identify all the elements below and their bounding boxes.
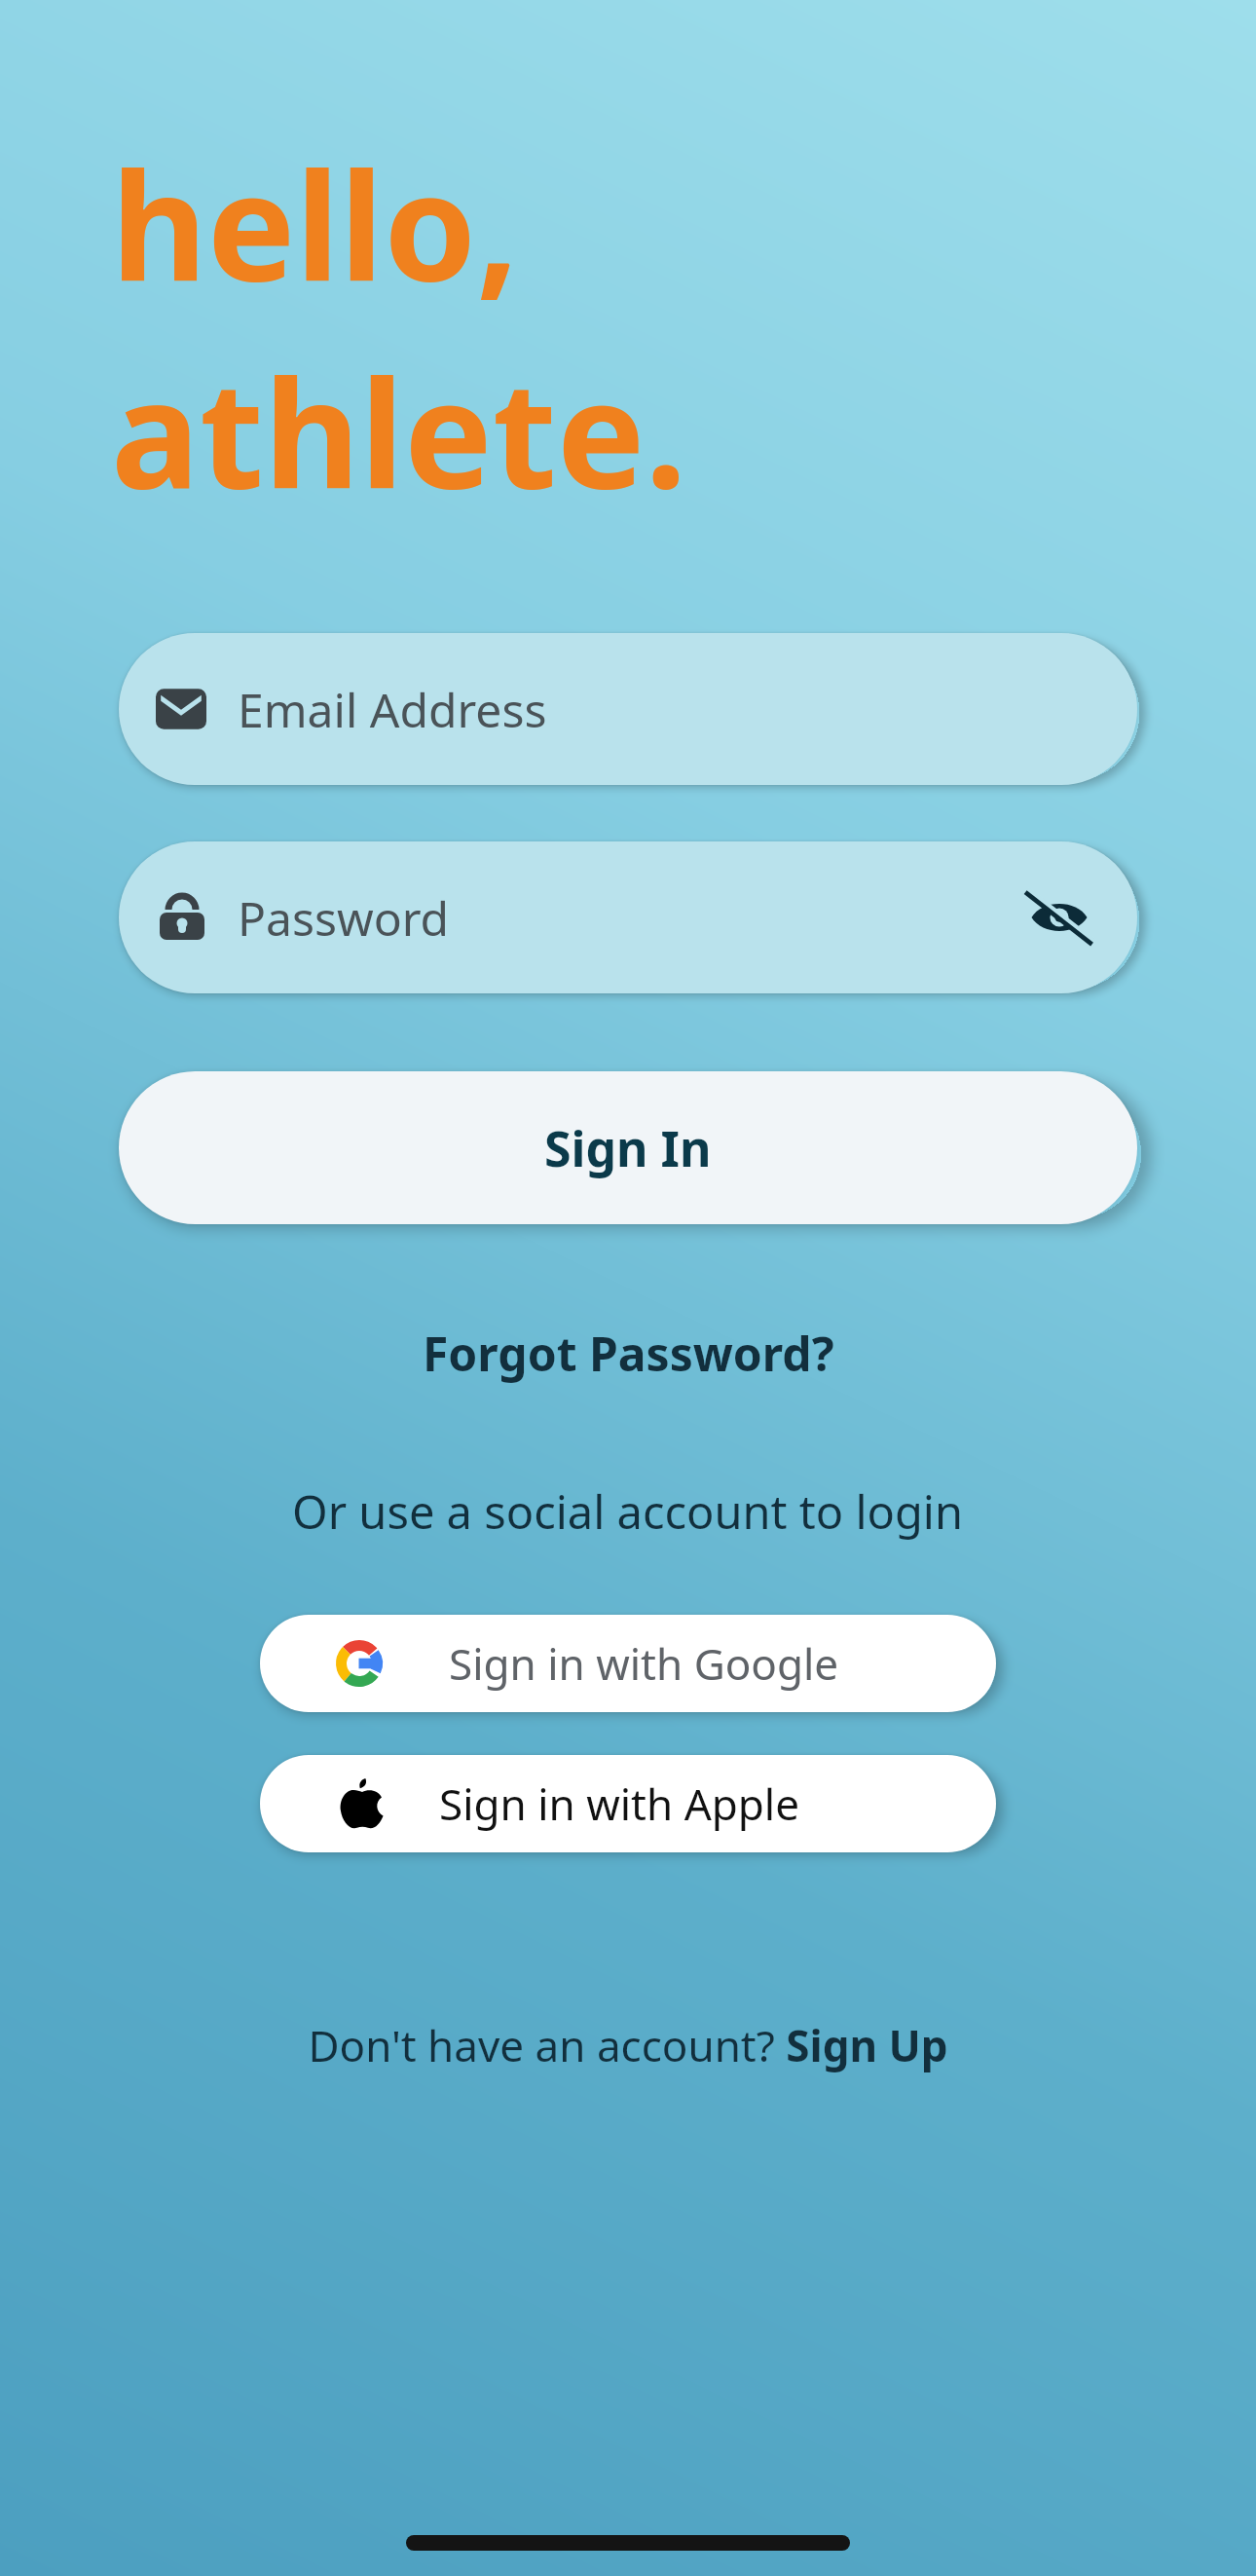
staticText: Sign in with Google [449, 1634, 839, 1693]
staticText: hello, [111, 123, 519, 324]
staticText: Forgot Password? [423, 1322, 834, 1385]
button[interactable]: Don't have an account? Sign Up [288, 2006, 968, 2084]
staticText: athlete. [111, 330, 687, 532]
staticText: Sign in with Apple [439, 1774, 800, 1833]
button[interactable]: Sign In [119, 1071, 1137, 1224]
staticText: Email Address [238, 678, 547, 741]
staticText: Or use a social account to login [292, 1480, 964, 1543]
staticText: Sign In [544, 1115, 712, 1181]
staticText: Don't have an account? Sign Up [308, 2016, 948, 2074]
button[interactable]: Sign in with Google [260, 1615, 996, 1712]
button[interactable]: Password [119, 841, 1137, 993]
staticText: Password [238, 886, 450, 950]
button[interactable]: Show password [1024, 882, 1094, 952]
button[interactable]: Forgot Password? [395, 1310, 862, 1397]
button[interactable]: Sign in with Apple [260, 1755, 996, 1852]
button[interactable]: Email Address [119, 633, 1137, 785]
